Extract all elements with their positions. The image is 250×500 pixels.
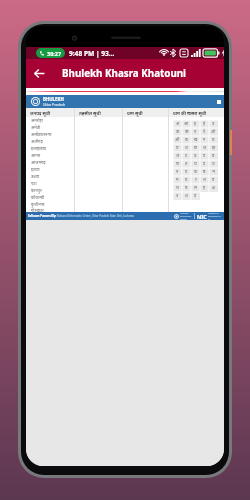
staticText: ए (194, 129, 197, 135)
button[interactable]: अमरोहा (26, 117, 74, 124)
staticText: कानपुर (31, 188, 42, 194)
button[interactable]: क्ष (209, 184, 218, 192)
button[interactable]: य (182, 176, 191, 184)
button[interactable]: ब (200, 168, 209, 176)
button[interactable]: ऋ (182, 128, 191, 136)
button[interactable]: ई (200, 120, 209, 128)
button[interactable]: ष (182, 184, 191, 192)
staticText: इटावा (31, 167, 40, 173)
staticText: आ (184, 121, 189, 127)
button[interactable]: आ (182, 120, 191, 128)
button[interactable]: श (173, 184, 182, 192)
button[interactable]: च (182, 144, 191, 152)
staticText: छ (194, 145, 197, 151)
staticText: 9:48 PM | 93... (69, 49, 115, 58)
button[interactable]: थ (191, 160, 200, 168)
button[interactable]: फ (191, 168, 200, 176)
button[interactable]: कुशीनगर (26, 201, 74, 208)
staticText: इलाहाबाद (31, 146, 46, 152)
button[interactable]: ङ (173, 144, 182, 152)
button[interactable]: ट (182, 152, 191, 160)
staticText: अमेठी (31, 125, 41, 131)
staticText: ढ (212, 153, 215, 159)
staticText: IT (208, 218, 210, 220)
button[interactable]: ज (200, 144, 209, 152)
button[interactable]: ए (191, 128, 200, 136)
button[interactable]: ग (200, 136, 209, 144)
button[interactable]: Back (26, 59, 52, 88)
button[interactable]: ठ (191, 152, 200, 160)
staticText: ऋ (185, 129, 189, 135)
button[interactable]: ऊ (173, 128, 182, 136)
staticText: ण (176, 161, 180, 167)
staticText: इ (194, 121, 197, 127)
button[interactable]: गोरखपुर (26, 208, 74, 212)
staticText: प (185, 169, 188, 175)
button[interactable]: न (173, 168, 182, 176)
staticText: Bhulekh Khasra Khatouni (62, 67, 187, 80)
button[interactable]: औ (173, 136, 182, 144)
button[interactable]: ज्ञ (182, 192, 191, 200)
staticText: ध (212, 161, 215, 167)
staticText: म (176, 177, 179, 183)
staticText: ई (203, 121, 206, 127)
button[interactable]: व (209, 176, 218, 184)
button[interactable]: आगरा (26, 152, 74, 159)
button[interactable]: क (182, 136, 191, 144)
button[interactable]: ऐ (200, 128, 209, 136)
button[interactable]: एटा (26, 180, 74, 187)
button[interactable]: ढ (209, 152, 218, 160)
button[interactable]: द (200, 160, 209, 168)
button[interactable]: उ (209, 120, 218, 128)
button[interactable]: भ (209, 168, 218, 176)
button[interactable]: ण (173, 160, 182, 168)
button[interactable]: ओ (209, 128, 218, 136)
button[interactable]: कौशाम्बी (26, 194, 74, 201)
staticText: ऐ (203, 129, 206, 135)
staticText: 30:27 (47, 50, 62, 57)
button[interactable]: ड (200, 152, 209, 160)
staticText: ङ (176, 145, 179, 151)
staticText: आजमगढ़ (31, 160, 46, 166)
button[interactable]: कानपुर (26, 187, 74, 194)
staticText: घ (212, 137, 215, 143)
button[interactable]: झ (209, 144, 218, 152)
button[interactable]: ल (200, 176, 209, 184)
staticText: NIC (197, 213, 207, 220)
button[interactable]: ध (209, 160, 218, 168)
staticText: अ (176, 121, 180, 127)
staticText: Software Powered By: (28, 214, 57, 218)
staticText: स (194, 185, 197, 191)
button[interactable]: त्र (173, 192, 182, 200)
button[interactable]: त (182, 160, 191, 168)
button[interactable]: अ (173, 120, 182, 128)
button[interactable]: ड़ (191, 192, 200, 200)
button[interactable]: आजमगढ़ (26, 159, 74, 166)
button[interactable]: ख (191, 136, 200, 144)
button[interactable]: र (191, 176, 200, 184)
button[interactable]: ञ (173, 152, 182, 160)
button[interactable]: घ (209, 136, 218, 144)
button[interactable]: इलाहाबाद (26, 145, 74, 152)
button[interactable]: अमेठी (26, 124, 74, 131)
button[interactable]: छ (191, 144, 200, 152)
staticText: झ (212, 145, 216, 151)
button[interactable]: म (173, 176, 182, 184)
button[interactable]: इ (191, 120, 200, 128)
button[interactable]: अलीगढ़ (26, 138, 74, 145)
staticText: अलीगढ़ (31, 139, 43, 145)
staticText: त्र (176, 193, 179, 199)
button[interactable]: स (191, 184, 200, 192)
button[interactable]: इटावा (26, 166, 74, 173)
staticText: ऊ (176, 129, 180, 135)
button[interactable]: अम्बेडकरनगर (26, 131, 74, 138)
button[interactable]: उन्नाव (26, 173, 74, 180)
staticText: ग्राम सूची (127, 110, 143, 116)
button[interactable]: प (182, 168, 191, 176)
staticText: भ (212, 169, 215, 175)
staticText: ज्ञ (185, 193, 188, 199)
staticText: फ (194, 169, 198, 175)
button[interactable]: ह (200, 184, 209, 192)
